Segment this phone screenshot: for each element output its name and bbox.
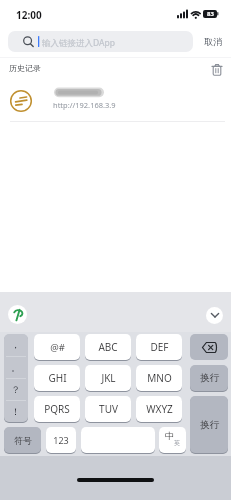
staticText: 换行 <box>200 372 219 384</box>
staticText: TUV <box>99 402 118 416</box>
button[interactable] <box>190 334 228 360</box>
staticText: 英 <box>174 439 180 447</box>
button[interactable]: http://192.168.3.9 <box>0 82 231 121</box>
button[interactable]: JKL <box>85 365 131 391</box>
staticText: 符号 <box>14 435 32 446</box>
staticText: ！ <box>11 406 21 418</box>
button[interactable]: TUV <box>85 396 131 422</box>
button[interactable]: @# <box>34 334 80 360</box>
button[interactable] <box>8 305 27 324</box>
button[interactable]: PQRS <box>34 396 80 422</box>
staticText: ABC <box>98 340 118 354</box>
button[interactable]: ， <box>4 334 28 422</box>
button[interactable]: DEF <box>136 334 182 360</box>
button[interactable]: 符号 <box>4 427 41 453</box>
button[interactable]: 换行 <box>190 365 228 391</box>
staticText: PQRS <box>44 402 70 416</box>
button[interactable] <box>81 427 155 453</box>
button[interactable] <box>206 307 223 324</box>
button[interactable]: WXYZ <box>136 396 182 422</box>
staticText: JKL <box>101 371 116 385</box>
staticText: 换行 <box>200 419 219 431</box>
button[interactable] <box>209 62 225 78</box>
staticText: 中 <box>165 430 174 441</box>
button[interactable]: 输入链接进入DApp <box>8 31 193 52</box>
staticText: ， <box>11 339 21 351</box>
staticText: 输入链接进入DApp <box>42 37 115 49</box>
staticText: GHI <box>48 371 67 385</box>
staticText: 123 <box>53 434 69 446</box>
button[interactable]: 换行 <box>190 396 228 453</box>
button[interactable]: GHI <box>34 365 80 391</box>
staticText: 取消 <box>204 36 222 47</box>
staticText: DEF <box>150 340 169 354</box>
staticText: MNO <box>147 371 172 385</box>
button[interactable]: 取消 <box>198 33 228 49</box>
button[interactable]: 123 <box>46 427 76 453</box>
staticText: @# <box>50 341 65 354</box>
button[interactable]: 中 <box>159 427 186 453</box>
staticText: http://192.168.3.9 <box>53 100 116 110</box>
staticText: 。 <box>11 362 21 374</box>
staticText: 12:00 <box>16 8 42 22</box>
staticText: ？ <box>11 384 21 396</box>
button[interactable]: ABC <box>85 334 131 360</box>
staticText: WXYZ <box>146 402 173 416</box>
button[interactable]: MNO <box>136 365 182 391</box>
staticText: 历史记录 <box>9 63 41 73</box>
staticText: 83 <box>207 10 214 18</box>
